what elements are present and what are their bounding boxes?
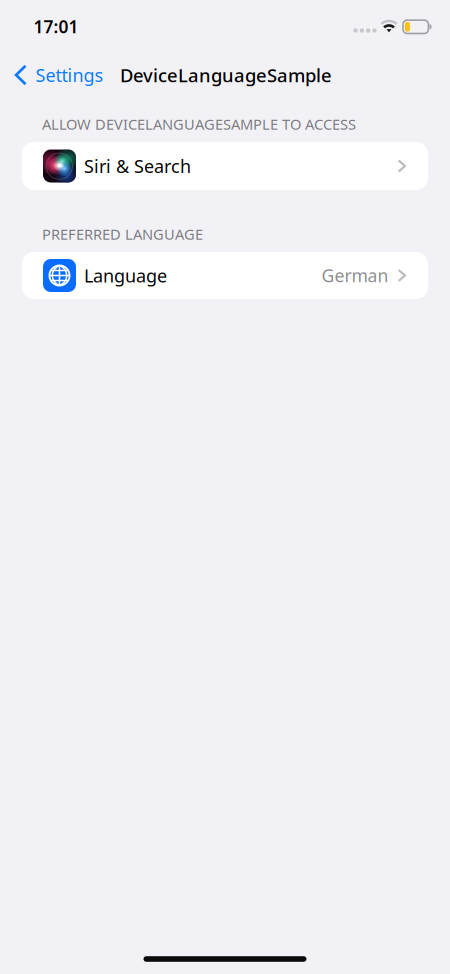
button[interactable]: Siri & Search [22,142,428,190]
staticText: PREFERRED LANGUAGE [42,224,203,244]
staticText: Settings [35,63,103,87]
staticText: 17:01 [33,15,78,38]
button[interactable]: Language [22,252,428,299]
staticText: Language [84,263,167,288]
staticText: ALLOW DEVICELANGUAGESAMPLE TO ACCESS [42,114,356,134]
staticText: Siri & Search [84,154,191,178]
button[interactable]: Settings [0,53,112,97]
staticText: German [322,263,389,287]
staticText: DeviceLanguageSample [120,62,332,88]
